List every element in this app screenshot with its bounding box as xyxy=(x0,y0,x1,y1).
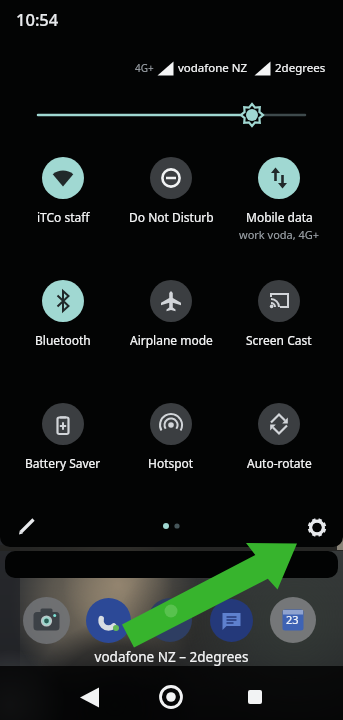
staticText: Do Not Disturb xyxy=(129,209,214,225)
button[interactable]: Do Not Disturb xyxy=(118,157,224,229)
button[interactable] xyxy=(13,512,41,540)
staticText: 4G+ xyxy=(135,61,154,75)
button[interactable] xyxy=(72,682,108,718)
staticText: vodafone NZ – 2degrees xyxy=(0,648,343,666)
staticText: vodafone NZ xyxy=(178,60,248,76)
button[interactable] xyxy=(86,598,131,643)
button[interactable] xyxy=(23,597,70,644)
staticText: Airplane mode xyxy=(130,332,213,348)
staticText: Bluetooth xyxy=(35,332,91,348)
staticText: Mobile data xyxy=(246,209,313,225)
button[interactable]: Battery Saver xyxy=(10,403,116,475)
button[interactable]: Auto-rotate xyxy=(226,403,332,475)
staticText: Auto-rotate xyxy=(247,455,312,471)
staticText: work voda, 4G+ xyxy=(239,227,320,242)
button[interactable] xyxy=(5,551,338,578)
button[interactable]: Mobile data xyxy=(226,157,332,249)
staticText: Hotspot xyxy=(148,455,194,471)
button[interactable] xyxy=(0,95,343,135)
staticText: Battery Saver xyxy=(25,455,101,471)
button[interactable] xyxy=(153,679,189,715)
button[interactable]: Hotspot xyxy=(118,403,224,475)
staticText: 2degrees xyxy=(275,60,326,76)
button[interactable]: Airplane mode xyxy=(118,280,224,352)
button[interactable]: iTCo staff xyxy=(10,157,116,229)
button[interactable] xyxy=(270,597,316,643)
staticText: 23 xyxy=(286,612,299,627)
staticText: 10:54 xyxy=(16,8,59,30)
button[interactable] xyxy=(210,599,253,642)
button[interactable]: Bluetooth xyxy=(10,280,116,352)
button[interactable]: Screen Cast xyxy=(226,280,332,352)
button[interactable] xyxy=(237,679,273,715)
button[interactable] xyxy=(303,514,331,542)
staticText: iTCo staff xyxy=(37,209,90,225)
staticText: Screen Cast xyxy=(246,332,312,348)
